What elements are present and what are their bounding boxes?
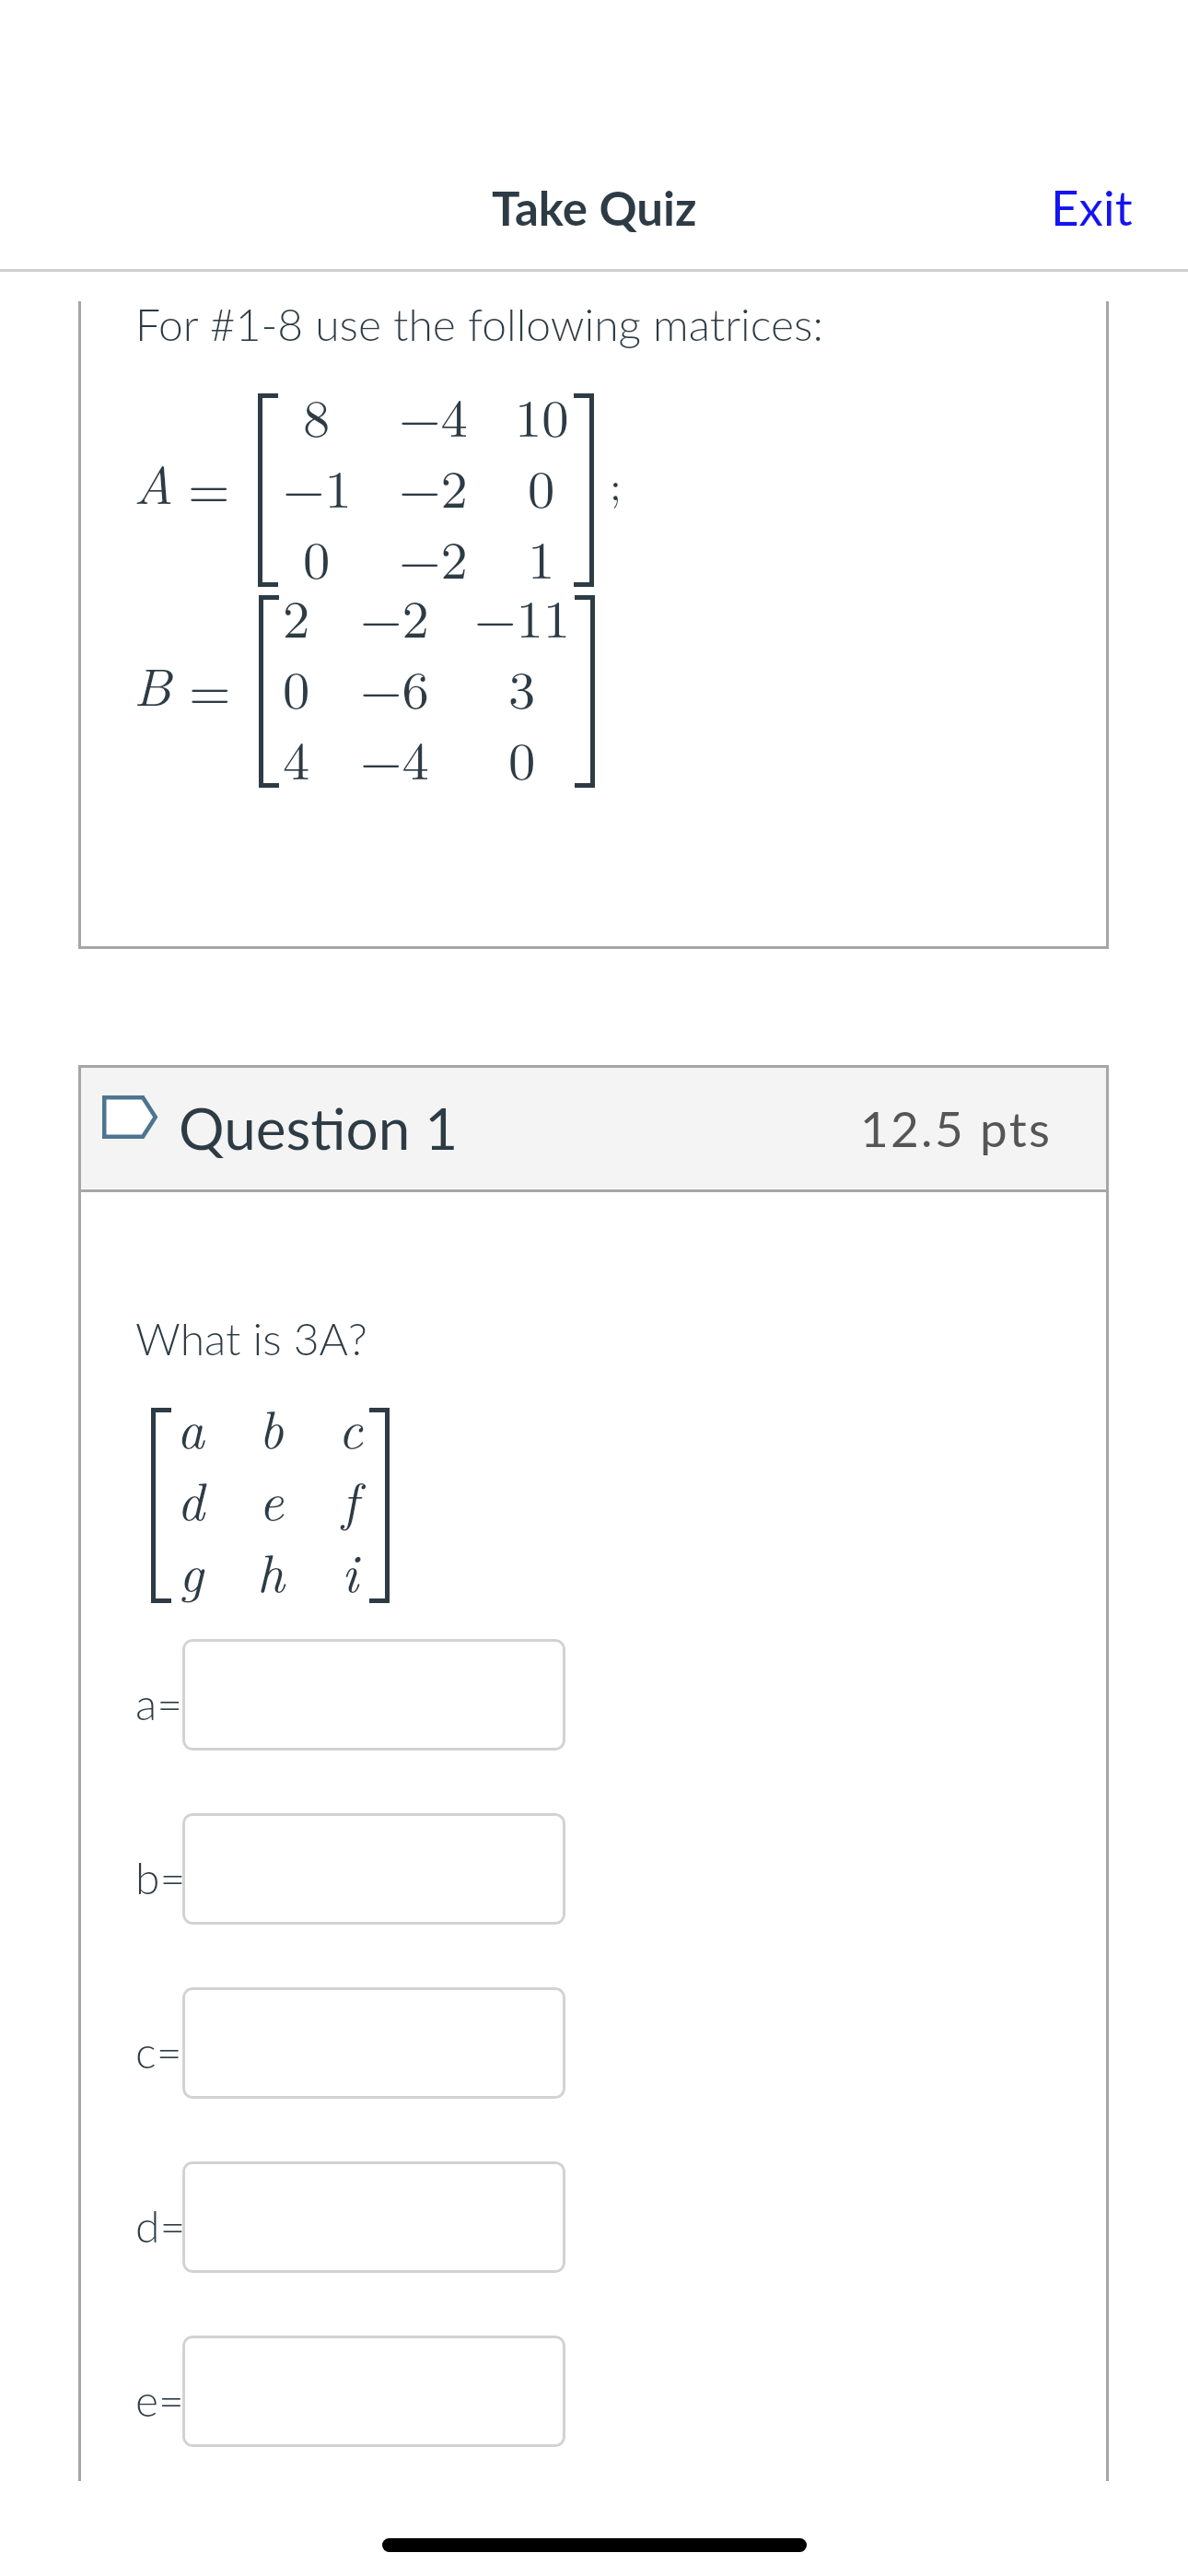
staticText: 0: [303, 520, 331, 594]
staticText: g: [179, 1533, 204, 1608]
staticText: For #1-8 use the following matrices:: [135, 298, 823, 351]
staticText: =: [188, 449, 230, 523]
button[interactable]: Answer field d: [182, 2161, 565, 2273]
staticText: −11: [474, 579, 571, 653]
staticText: c: [338, 1389, 363, 1464]
button[interactable]: Answer field c: [182, 1987, 565, 2099]
staticText: 3: [508, 650, 536, 724]
staticText: d=: [135, 2199, 186, 2253]
staticText: i: [342, 1533, 358, 1608]
staticText: 0: [528, 449, 555, 523]
staticText: =: [189, 650, 231, 725]
staticText: c=: [135, 2025, 182, 2078]
staticText: a: [177, 1389, 204, 1464]
button[interactable]: Exit quiz: [1008, 163, 1175, 252]
staticText: 0: [508, 720, 536, 795]
staticText: pts: [980, 1099, 1053, 1158]
staticText: e=: [135, 2373, 184, 2427]
staticText: b: [259, 1389, 284, 1464]
button[interactable]: Answer field b: [182, 1813, 565, 1925]
button[interactable]: Take Quiz: [460, 162, 728, 253]
staticText: 1: [528, 520, 555, 594]
staticText: 4: [283, 720, 310, 795]
staticText: −2: [399, 520, 468, 594]
staticText: −6: [360, 650, 429, 724]
staticText: 12.5: [860, 1099, 965, 1158]
staticText: Exit: [1051, 178, 1133, 237]
staticText: A: [134, 445, 174, 520]
staticText: e: [259, 1461, 284, 1536]
staticText: f: [342, 1461, 358, 1536]
staticText: −4: [360, 720, 429, 795]
staticText: −2: [399, 449, 468, 523]
staticText: Question 1: [179, 1094, 459, 1162]
staticText: −2: [360, 579, 429, 653]
staticText: −4: [399, 378, 468, 452]
staticText: Take Quiz: [492, 180, 697, 236]
staticText: ;: [610, 453, 622, 512]
staticText: h: [257, 1533, 285, 1608]
staticText: 2: [283, 579, 310, 653]
staticText: What is 3A?: [135, 1312, 367, 1365]
staticText: −1: [283, 449, 352, 523]
staticText: b=: [135, 1851, 186, 1904]
button[interactable]: Answer field e: [182, 2336, 565, 2447]
staticText: 10: [515, 378, 569, 452]
staticText: d: [177, 1461, 204, 1536]
staticText: 0: [283, 650, 310, 724]
staticText: B: [134, 647, 172, 721]
staticText: 8: [303, 378, 331, 452]
button[interactable]: Answer field a: [182, 1639, 565, 1751]
staticText: a=: [135, 1677, 183, 1730]
